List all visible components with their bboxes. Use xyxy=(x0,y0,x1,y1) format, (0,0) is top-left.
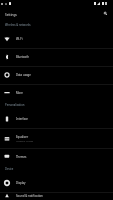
staticText: Personalization xyxy=(5,103,25,107)
button[interactable]: Bluetooth xyxy=(0,49,113,67)
button[interactable]: Equalizer xyxy=(0,129,113,149)
staticText: Themes xyxy=(16,155,27,159)
staticText: Wireless & networks xyxy=(5,23,31,27)
button[interactable]: Data usage xyxy=(0,67,113,85)
button[interactable]: Search xyxy=(99,7,111,19)
staticText: AudioFX Access xyxy=(16,139,34,142)
staticText: Wi-Fi xyxy=(16,37,23,41)
staticText: Data usage xyxy=(16,73,31,77)
staticText: Sound & notification xyxy=(16,194,43,198)
staticText: Interface xyxy=(16,117,28,121)
staticText: Equalizer xyxy=(16,135,29,139)
staticText: Display xyxy=(16,181,26,185)
button[interactable]: Interface xyxy=(0,111,113,129)
staticText: Settings xyxy=(5,13,17,17)
button[interactable]: Wi-Fi xyxy=(0,31,113,49)
staticText: More xyxy=(16,91,23,95)
staticText: Device xyxy=(5,167,14,171)
staticText: Bluetooth xyxy=(16,55,29,59)
button[interactable]: Sound & notification xyxy=(0,193,113,200)
button[interactable]: More xyxy=(0,85,113,103)
button[interactable]: Themes xyxy=(0,149,113,167)
button[interactable]: Display xyxy=(0,175,113,193)
